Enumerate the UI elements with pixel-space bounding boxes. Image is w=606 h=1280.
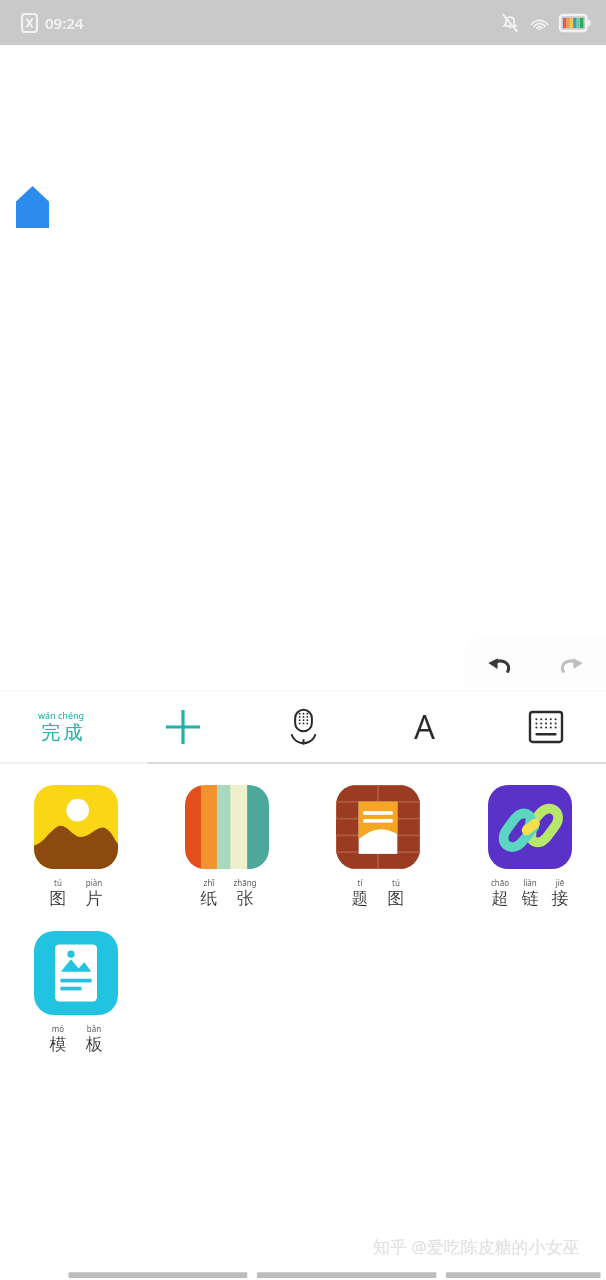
button[interactable]: Add (122, 691, 243, 762)
staticText: 板 (76, 1034, 112, 1055)
staticText: 片 (76, 888, 112, 909)
staticText: 张 (227, 888, 263, 909)
staticText: 知乎 @爱吃陈皮糖的小女巫 (373, 1235, 580, 1258)
button[interactable]: Keyboard (485, 691, 606, 762)
staticText: 图 (40, 888, 76, 909)
button[interactable]: Text style (364, 691, 485, 762)
staticText: A (414, 704, 436, 749)
staticText: tí (342, 877, 378, 888)
staticText: piàn (76, 877, 112, 888)
staticText: chāo (485, 877, 515, 888)
staticText: zhǐ (191, 877, 227, 888)
button[interactable]: wán chéng (0, 691, 122, 762)
staticText: 题 (342, 888, 378, 909)
staticText: 接 (545, 888, 575, 909)
staticText: jiē (545, 877, 575, 888)
staticText: tú (378, 877, 414, 888)
staticText: tú (40, 877, 76, 888)
staticText: 链 (515, 888, 545, 909)
staticText: 模 (40, 1034, 76, 1055)
staticText: mó (40, 1023, 76, 1034)
staticText: 超 (485, 888, 515, 909)
button[interactable]: chāo (454, 781, 606, 913)
button[interactable]: Redo (535, 638, 606, 691)
staticText: 纸 (191, 888, 227, 909)
button[interactable]: tí (302, 781, 454, 913)
staticText: bǎn (76, 1023, 112, 1034)
button[interactable]: tú (0, 781, 151, 913)
staticText: 图 (378, 888, 414, 909)
staticText: 完成 (40, 721, 84, 745)
staticText: zhāng (227, 877, 263, 888)
button[interactable]: zhǐ (151, 781, 302, 913)
staticText: 09:24 (45, 13, 84, 33)
staticText: wán chéng (38, 709, 85, 721)
button[interactable]: mó (0, 927, 151, 1059)
button[interactable]: Undo (465, 638, 535, 691)
button[interactable]: Voice input (243, 691, 364, 762)
staticText: liàn (515, 877, 545, 888)
